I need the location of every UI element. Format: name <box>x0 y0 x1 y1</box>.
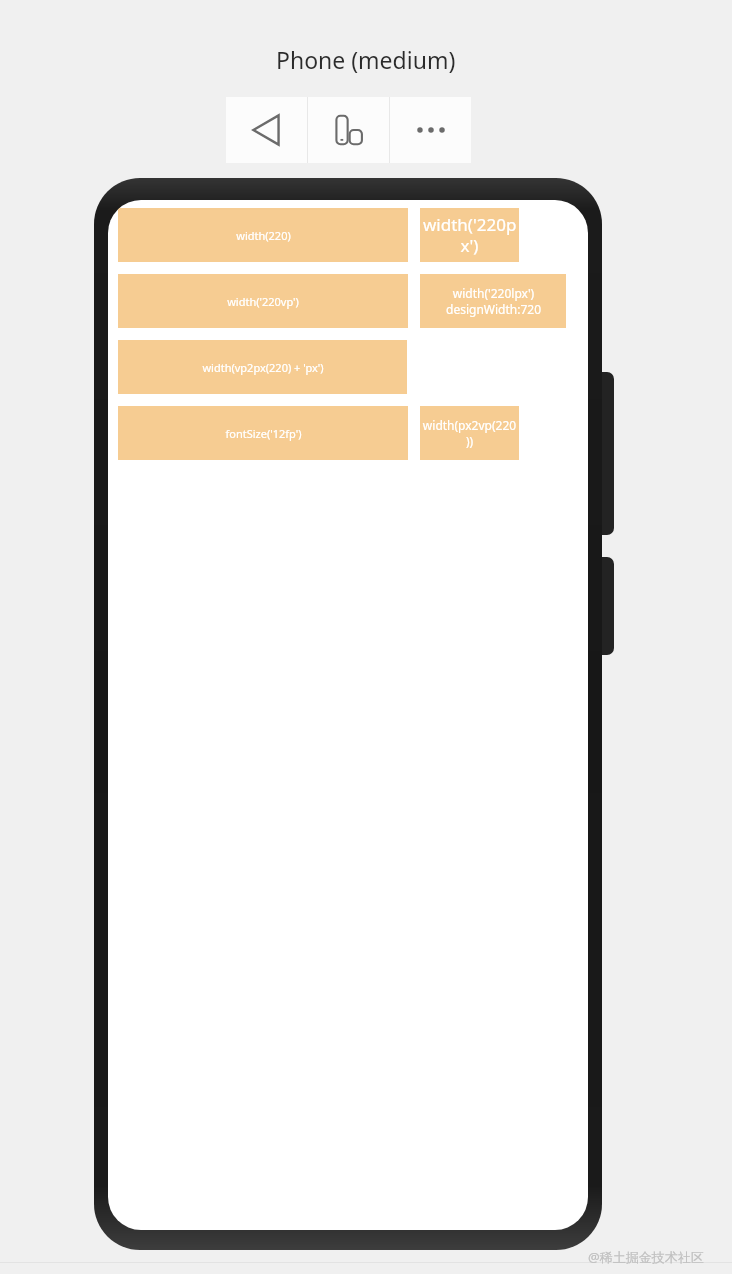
button[interactable]: width('220vp') <box>118 274 408 328</box>
staticText: width('220lpx') designWidth:720 <box>446 285 541 318</box>
staticText: width(px2vp(220)) <box>422 417 517 450</box>
button[interactable]: width(220) <box>118 208 408 262</box>
button[interactable]: width(px2vp(220)) <box>420 406 519 460</box>
button[interactable]: width('220px') <box>420 208 519 262</box>
button[interactable]: Back <box>226 97 307 163</box>
staticText: width('220px') <box>422 213 517 257</box>
staticText: width(220) <box>236 228 291 243</box>
staticText: @稀土掘金技术社区 <box>588 1248 704 1266</box>
staticText: fontSize('12fp') <box>225 426 302 441</box>
staticText: width(vp2px(220) + 'px') <box>202 360 324 375</box>
button[interactable]: width('220lpx') designWidth:720 <box>420 274 566 328</box>
button[interactable]: width(vp2px(220) + 'px') <box>118 340 407 394</box>
button[interactable]: fontSize('12fp') <box>118 406 408 460</box>
button[interactable]: More options <box>390 97 471 163</box>
staticText: Phone (medium) <box>276 44 456 75</box>
staticText: width('220vp') <box>227 294 299 309</box>
button[interactable]: Toggle device orientation <box>308 97 389 163</box>
